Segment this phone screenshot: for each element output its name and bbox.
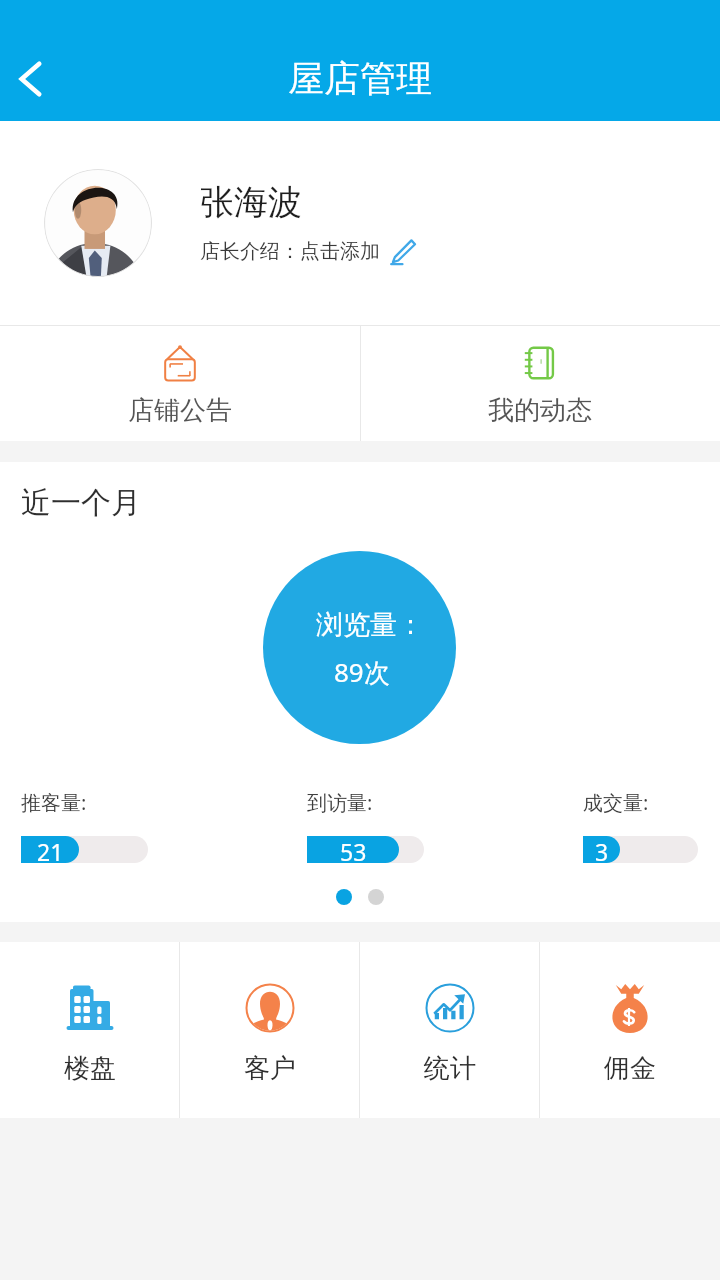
staticText: 53 — [340, 836, 367, 863]
staticText: 成交量: — [583, 789, 649, 816]
button[interactable] — [368, 889, 384, 905]
staticText: 屋店管理 — [288, 56, 432, 101]
button[interactable]: 21 — [21, 836, 148, 863]
staticText: 楼盘 — [64, 1052, 116, 1085]
button[interactable]: 楼盘 — [0, 942, 180, 1118]
staticText: 推客量: — [21, 789, 87, 816]
button[interactable]: 张海波 — [0, 121, 720, 325]
staticText: 89次 — [334, 654, 390, 690]
staticText: 3 — [595, 836, 609, 863]
button[interactable]: 浏览量： — [263, 551, 456, 744]
staticText: 店长介绍：点击添加 — [200, 239, 380, 264]
staticText: 张海波 — [200, 181, 302, 224]
staticText: 到访量: — [307, 789, 373, 816]
staticText: 店铺公告 — [128, 394, 232, 427]
button[interactable]: 店铺公告 — [0, 326, 360, 441]
staticText: 浏览量： — [316, 608, 424, 642]
button[interactable] — [336, 889, 352, 905]
staticText: 统计 — [424, 1052, 476, 1085]
staticText: 21 — [37, 836, 64, 863]
button[interactable]: 3 — [583, 836, 698, 863]
staticText: 佣金 — [604, 1052, 656, 1085]
button[interactable]: 53 — [307, 836, 424, 863]
button[interactable]: 统计 — [360, 942, 540, 1118]
button[interactable]: 我的动态 — [360, 326, 720, 441]
button[interactable]: 客户 — [180, 942, 360, 1118]
button[interactable]: 佣金 — [540, 942, 720, 1118]
button[interactable]: Back — [0, 36, 60, 121]
staticText: 近一个月 — [21, 484, 141, 522]
staticText: 我的动态 — [488, 394, 592, 427]
staticText: 客户 — [244, 1052, 296, 1085]
